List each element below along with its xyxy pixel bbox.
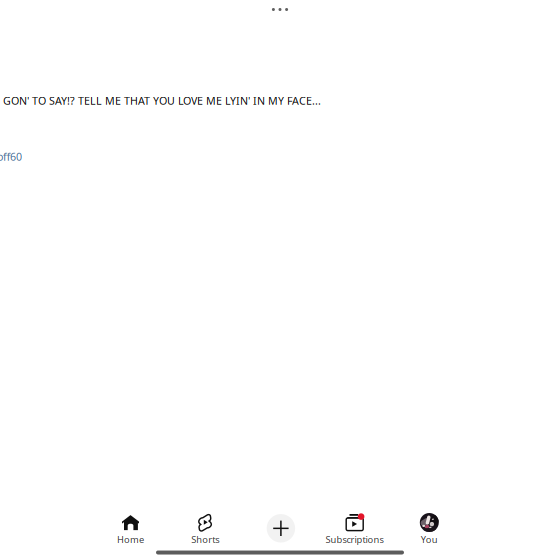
button[interactable]: Subscriptions [317, 507, 392, 556]
staticText: Home [117, 533, 144, 546]
button[interactable]: off60 [0, 149, 22, 164]
button[interactable]: Home [93, 507, 168, 556]
button[interactable]: More options [263, 0, 297, 20]
staticText: Subscriptions [326, 533, 384, 546]
staticText: GON' TO SAY!? TELL ME THAT YOU LOVE ME L… [3, 93, 321, 108]
button[interactable]: You [392, 507, 467, 556]
button[interactable]: Create [243, 504, 318, 553]
staticText: You [421, 533, 438, 546]
staticText: off60 [0, 149, 22, 164]
staticText: Shorts [191, 533, 219, 546]
button[interactable]: Shorts [168, 507, 242, 556]
